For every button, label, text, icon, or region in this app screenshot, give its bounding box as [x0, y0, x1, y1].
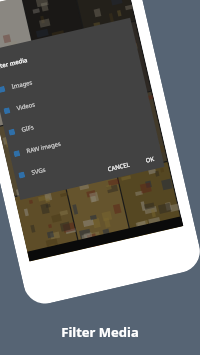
staticText: GIFs	[21, 123, 35, 134]
staticText: RAW images	[26, 140, 62, 155]
staticText: CANCEL	[107, 160, 131, 173]
staticText: Images	[11, 78, 33, 91]
button[interactable]: Images	[0, 47, 142, 102]
button[interactable]: GIFs	[3, 90, 152, 144]
button[interactable]: Videos	[0, 68, 147, 123]
staticText: OK	[145, 155, 155, 165]
staticText: Filter media	[0, 56, 29, 71]
button[interactable]: OK	[142, 152, 158, 167]
staticText: Videos	[16, 100, 36, 112]
button[interactable]: CANCEL	[104, 158, 133, 176]
button[interactable]: SVGs	[12, 133, 162, 187]
staticText: Filter Media	[0, 323, 200, 341]
staticText: SVGs	[31, 166, 47, 177]
button[interactable]: RAW images	[8, 111, 157, 166]
